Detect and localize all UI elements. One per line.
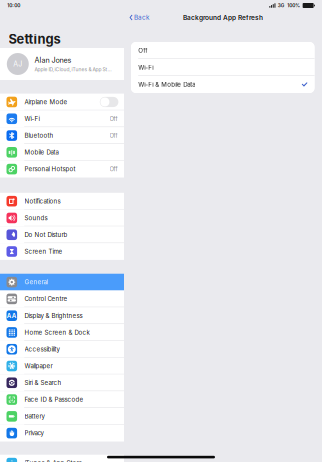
button[interactable]: Do Not Disturb [0,226,124,243]
staticText: Screen Time [24,248,62,255]
staticText: 3G [278,3,285,8]
staticText: Face ID & Passcode [24,396,83,403]
button[interactable]: Wi-Fi [0,110,124,127]
button[interactable]: Home Screen & Dock [0,324,124,341]
staticText: Background App Refresh [183,13,263,21]
button[interactable]: Battery [0,408,124,425]
button[interactable]: Wi-Fi & Mobile Data [131,76,314,93]
staticText: Settings [9,31,61,47]
staticText: iTunes & App Store [24,459,82,462]
staticText: Off [138,47,147,54]
button[interactable]: Privacy [0,425,124,441]
staticText: Display & Brightness [24,312,82,319]
button[interactable]: Bluetooth [0,127,124,144]
staticText: Home Screen & Dock [24,329,89,336]
staticText: Personal Hotspot [24,165,75,173]
staticText: General [24,278,47,286]
button[interactable]: Notifications [0,193,124,210]
staticText: Battery [24,413,44,420]
button[interactable]: Off [131,42,314,59]
button[interactable]: Sounds [0,210,124,226]
button[interactable]: Mobile Data [0,144,124,161]
staticText: AJ [13,60,22,68]
staticText: Alan Jones [35,56,72,64]
button[interactable]: AJ [0,48,124,80]
staticText: Off [109,166,117,173]
button[interactable]: Airplane Mode [0,94,124,110]
staticText: Wallpaper [24,362,52,370]
staticText: Wi-Fi [138,64,153,71]
staticText: Wi-Fi & Mobile Data [138,81,195,88]
button[interactable]: General [0,274,124,290]
button[interactable]: Control Centre [0,290,124,307]
staticText: Off [109,132,117,139]
staticText: Mobile Data [24,149,58,156]
staticText: 100% [287,3,300,8]
staticText: Off [109,115,117,122]
button[interactable]: Face ID & Passcode [0,391,124,408]
staticText: Sounds [24,214,47,222]
staticText: Privacy [24,429,43,437]
button[interactable]: Wallpaper [0,358,124,374]
button[interactable]: Accessibility [0,341,124,358]
button[interactable]: Screen Time [0,243,124,260]
staticText: Apple ID, iCloud, iTunes & App St… [35,66,112,72]
staticText: Airplane Mode [24,98,67,106]
button[interactable]: iTunes & App Store [0,455,124,462]
staticText: Notifications [24,197,60,205]
button[interactable]: AA [0,307,124,324]
staticText: Bluetooth [24,132,53,139]
staticText: Control Centre [24,295,67,303]
button[interactable]: Wi-Fi [131,59,314,76]
staticText: Wi-Fi [24,115,39,122]
staticText: Accessibility [24,345,59,353]
staticText: AA [7,312,17,319]
staticText: Siri & Search [24,379,61,386]
staticText: 10:00 [7,3,20,8]
button[interactable]: Siri & Search [0,374,124,391]
staticText: Back [134,14,150,21]
button[interactable]: Back [124,11,150,24]
staticText: Do Not Disturb [24,231,67,238]
button[interactable]: Personal Hotspot [0,161,124,177]
